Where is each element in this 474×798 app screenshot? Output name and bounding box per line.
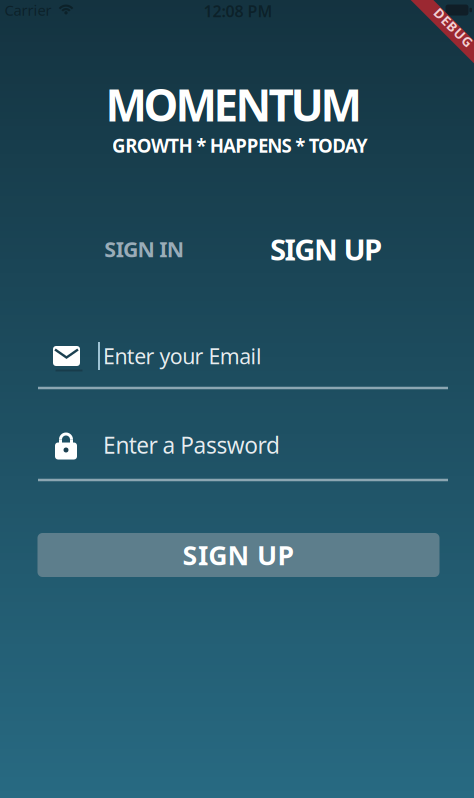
staticText: GROWTH * HAPPENS * TODAY bbox=[112, 133, 368, 158]
staticText: SIGN UP bbox=[183, 537, 294, 573]
staticText: MOMENTUM bbox=[105, 75, 361, 134]
staticText: 12:08 PM bbox=[203, 0, 272, 22]
button[interactable]: SIGN UP bbox=[241, 227, 411, 271]
staticText: Enter a Password bbox=[103, 430, 280, 460]
button[interactable]: Enter a Password bbox=[38, 423, 448, 467]
staticText: Carrier bbox=[4, 0, 51, 20]
staticText: DEBUG bbox=[429, 19, 474, 36]
staticText: SIGN UP bbox=[270, 229, 382, 268]
staticText: SIGN IN bbox=[104, 235, 184, 263]
button[interactable]: SIGN IN bbox=[59, 227, 229, 271]
button[interactable]: SIGN UP bbox=[37, 533, 439, 577]
button[interactable]: Enter your Email bbox=[38, 336, 448, 376]
staticText: Enter your Email bbox=[103, 342, 262, 370]
